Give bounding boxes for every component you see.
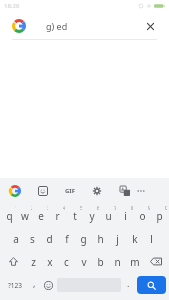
button[interactable]: v bbox=[76, 251, 91, 272]
button[interactable]: Stickers bbox=[33, 181, 53, 201]
button[interactable]: p bbox=[152, 205, 167, 226]
staticText: k bbox=[132, 232, 138, 246]
button[interactable]: q bbox=[2, 205, 16, 226]
button[interactable]: m bbox=[127, 251, 142, 272]
button[interactable]: Clear search bbox=[139, 15, 161, 37]
staticText: . bbox=[127, 277, 130, 289]
staticText: GIF bbox=[65, 187, 75, 195]
button[interactable]: h bbox=[93, 228, 108, 249]
staticText: t bbox=[73, 209, 77, 223]
staticText: 7 bbox=[114, 205, 116, 212]
staticText: f bbox=[65, 232, 69, 246]
button[interactable]: z bbox=[26, 251, 40, 272]
staticText: p bbox=[156, 209, 163, 223]
staticText: q bbox=[6, 209, 13, 223]
staticText: z bbox=[31, 255, 36, 269]
staticText: u bbox=[105, 209, 112, 223]
staticText: y bbox=[89, 209, 95, 223]
button[interactable]: . bbox=[123, 274, 134, 296]
staticText: r bbox=[55, 209, 60, 223]
staticText: g bbox=[80, 232, 87, 246]
button[interactable]: Shift bbox=[2, 251, 24, 272]
button[interactable]: Google bbox=[8, 15, 30, 37]
button[interactable]: w bbox=[18, 205, 32, 226]
staticText: 4 bbox=[63, 205, 65, 212]
button[interactable]: l bbox=[144, 228, 159, 249]
staticText: 9 bbox=[148, 205, 150, 212]
button[interactable]: Search bbox=[137, 276, 166, 294]
button[interactable]: , bbox=[29, 274, 40, 296]
button[interactable]: b bbox=[93, 251, 108, 272]
staticText: 2 bbox=[31, 205, 32, 212]
staticText: g) ed bbox=[46, 20, 68, 32]
staticText: 6 bbox=[97, 205, 99, 212]
button[interactable]: GIF bbox=[59, 180, 81, 202]
staticText: c bbox=[64, 255, 69, 269]
staticText: i bbox=[124, 209, 127, 223]
staticText: ?123 bbox=[8, 281, 22, 290]
button[interactable]: a bbox=[9, 228, 23, 249]
staticText: 5 bbox=[80, 205, 82, 212]
staticText: 0 bbox=[165, 205, 167, 212]
staticText: 18:26 bbox=[4, 2, 20, 10]
staticText: s bbox=[30, 232, 35, 246]
staticText: m bbox=[130, 255, 140, 269]
staticText: l bbox=[150, 232, 153, 246]
staticText: d bbox=[46, 232, 53, 246]
button[interactable]: t bbox=[67, 205, 82, 226]
button[interactable]: i bbox=[118, 205, 133, 226]
button[interactable]: Settings bbox=[87, 181, 107, 201]
button[interactable]: k bbox=[127, 228, 142, 249]
staticText: a bbox=[13, 232, 19, 246]
button[interactable]: Translate bbox=[115, 181, 135, 201]
button[interactable]: n bbox=[110, 251, 125, 272]
button[interactable]: ?123 bbox=[2, 274, 27, 296]
staticText: 3 bbox=[47, 205, 48, 212]
staticText: w bbox=[21, 209, 29, 223]
button[interactable]: c bbox=[59, 251, 74, 272]
button[interactable]: e bbox=[34, 205, 48, 226]
staticText: b bbox=[97, 255, 104, 269]
staticText: e bbox=[38, 209, 44, 223]
button[interactable]: More options bbox=[135, 181, 147, 201]
staticText: o bbox=[139, 209, 146, 223]
button[interactable]: d bbox=[42, 228, 57, 249]
button[interactable]: r bbox=[50, 205, 65, 226]
staticText: 1 bbox=[15, 205, 16, 212]
button[interactable]: u bbox=[101, 205, 116, 226]
button[interactable]: Backspace bbox=[144, 251, 167, 272]
button[interactable]: y bbox=[84, 205, 99, 226]
button[interactable]: x bbox=[42, 251, 57, 272]
staticText: h bbox=[97, 232, 104, 246]
button[interactable]: Emoji bbox=[42, 274, 55, 296]
button[interactable]: j bbox=[110, 228, 125, 249]
staticText: j bbox=[116, 232, 119, 246]
staticText: , bbox=[33, 277, 36, 289]
button[interactable]: s bbox=[25, 228, 40, 249]
staticText: v bbox=[81, 255, 87, 269]
button[interactable]: o bbox=[135, 205, 150, 226]
staticText: x bbox=[47, 255, 53, 269]
button[interactable]: f bbox=[59, 228, 74, 249]
staticText: 8 bbox=[131, 205, 133, 212]
button[interactable]: Google search bbox=[5, 181, 25, 201]
staticText: n bbox=[114, 255, 121, 269]
button[interactable]: g bbox=[76, 228, 91, 249]
